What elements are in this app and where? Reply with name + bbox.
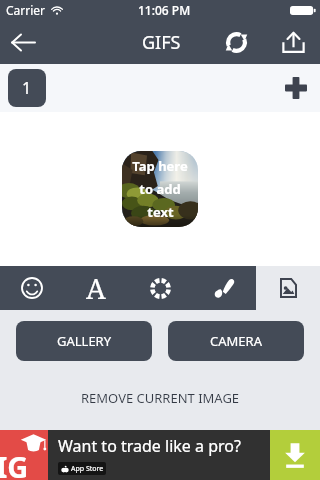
staticText: A (86, 269, 106, 307)
button[interactable]: Back (0, 20, 47, 64)
button[interactable]: Stickers (0, 266, 64, 310)
staticText: text (147, 203, 174, 221)
staticText: REMOVE CURRENT IMAGE (81, 389, 240, 407)
button[interactable]: 1 (8, 69, 46, 107)
button[interactable]: Add page (272, 64, 320, 112)
staticText: 1 (22, 77, 32, 99)
staticText: to add (139, 180, 181, 198)
button[interactable]: Download (270, 430, 320, 480)
button[interactable]: GALLERY (16, 321, 152, 361)
button[interactable]: Frames (128, 266, 192, 310)
button[interactable]: A (64, 266, 128, 310)
staticText: GIFS (142, 30, 181, 55)
button[interactable]: Tap here (122, 151, 198, 227)
button[interactable]: CAMERA (168, 321, 304, 361)
staticText: IG (0, 447, 29, 480)
staticText: App Store (71, 464, 104, 474)
staticText: 11:06 PM (138, 2, 191, 18)
button[interactable]: Share (270, 20, 317, 64)
button[interactable]: Background image (256, 266, 320, 310)
button[interactable]: Refresh (213, 20, 260, 64)
staticText: CAMERA (210, 332, 262, 350)
button[interactable]: Draw (192, 266, 256, 310)
button[interactable]: App Store (58, 462, 106, 475)
button[interactable]: REMOVE CURRENT IMAGE (0, 383, 320, 413)
staticText: Want to trade like a pro? (58, 435, 241, 457)
staticText: Carrier (6, 2, 46, 18)
staticText: Tap here (132, 157, 188, 175)
staticText: GALLERY (57, 332, 112, 350)
